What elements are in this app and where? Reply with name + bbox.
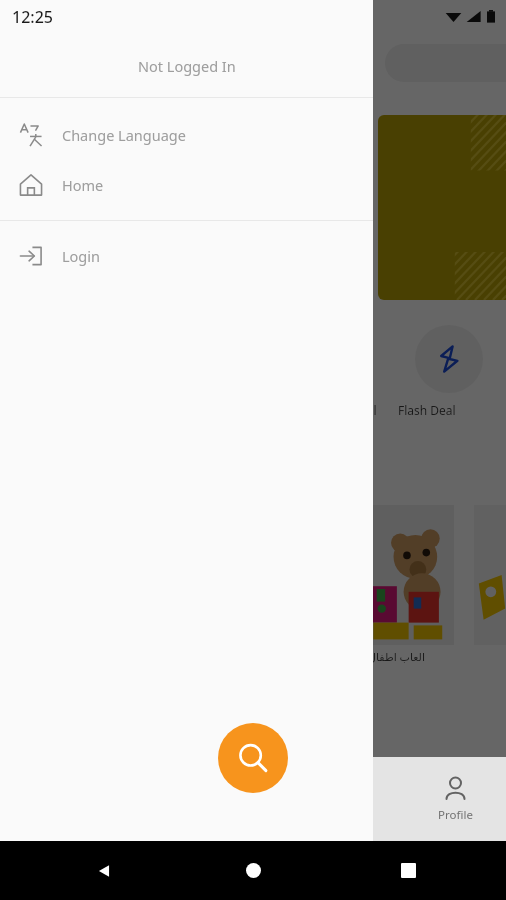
button[interactable]: Cart <box>304 757 405 841</box>
staticText: Flash Deal <box>398 402 456 418</box>
button[interactable]: Search <box>218 723 288 793</box>
staticText: Change Language <box>62 125 186 145</box>
staticText: Not Logged In <box>138 56 236 76</box>
button[interactable]: Not Logged In <box>0 34 373 97</box>
staticText: Login <box>62 246 100 266</box>
staticText: Profile <box>438 807 473 823</box>
button[interactable]: Change Language <box>0 110 373 160</box>
staticText: eal <box>360 402 377 418</box>
staticText: Home <box>62 175 104 195</box>
staticText: العاب اطفال <box>368 649 426 664</box>
button[interactable]: Home <box>0 160 373 210</box>
button[interactable]: Profile <box>405 757 506 841</box>
button[interactable]: Login <box>0 231 373 281</box>
staticText: 12:25 <box>12 6 53 28</box>
